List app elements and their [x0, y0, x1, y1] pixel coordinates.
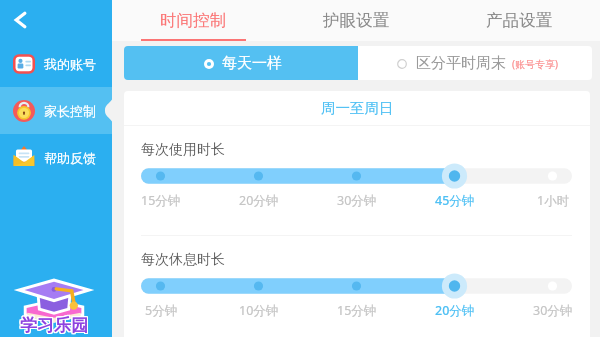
staticText: 每次使用时长: [141, 141, 225, 159]
staticText: 每次休息时长: [141, 251, 225, 269]
staticText: 时间控制: [160, 10, 226, 31]
staticText: 1小时: [537, 192, 570, 207]
staticText: 30分钟: [337, 192, 377, 207]
staticText: 每天一样: [222, 54, 282, 73]
button[interactable]: 护眼设置: [274, 0, 437, 41]
staticText: 家长控制: [44, 103, 96, 119]
staticText: 学习乐园: [19, 315, 87, 336]
staticText: 15分钟: [337, 302, 377, 317]
staticText: 学习乐园: [20, 314, 88, 335]
staticText: 学习乐园: [21, 315, 89, 336]
staticText: 学习乐园: [21, 314, 89, 335]
staticText: 学习乐园: [19, 314, 87, 335]
staticText: 我的账号: [44, 56, 96, 72]
staticText: (账号专享): [512, 57, 558, 71]
button[interactable]: 帮助反馈: [0, 134, 112, 181]
staticText: 30分钟: [533, 302, 573, 317]
staticText: 20分钟: [435, 302, 475, 317]
staticText: 产品设置: [486, 10, 552, 31]
staticText: 5分钟: [145, 302, 178, 317]
button[interactable]: Back: [0, 0, 112, 40]
button[interactable]: 家长控制: [0, 87, 112, 134]
button[interactable]: 每天一样: [124, 46, 358, 80]
button[interactable]: 我的账号: [0, 40, 112, 87]
staticText: 区分平时周末: [416, 54, 506, 73]
staticText: 10分钟: [239, 302, 279, 317]
staticText: 护眼设置: [323, 10, 389, 31]
button[interactable]: 产品设置: [437, 0, 600, 41]
staticText: 20分钟: [239, 192, 279, 207]
staticText: 学习乐园: [20, 315, 88, 336]
staticText: 15分钟: [141, 192, 181, 207]
staticText: 学习乐园: [20, 316, 88, 337]
staticText: 45分钟: [435, 192, 475, 207]
staticText: 周一至周日: [321, 99, 394, 117]
button[interactable]: 时间控制: [112, 0, 274, 41]
staticText: 帮助反馈: [44, 150, 96, 166]
button[interactable]: 区分平时周末: [358, 46, 592, 80]
staticText: 学习乐园: [19, 316, 87, 337]
staticText: 学习乐园: [21, 316, 89, 337]
